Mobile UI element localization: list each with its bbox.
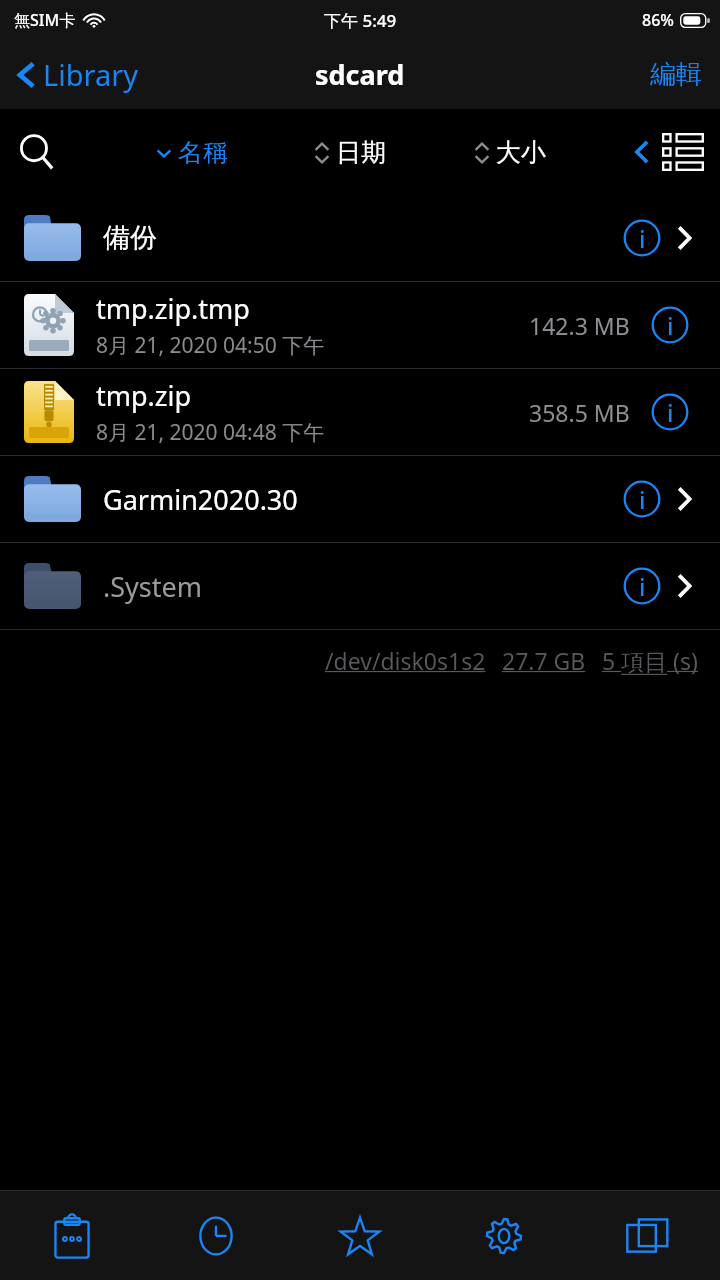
- staticText: i: [639, 222, 646, 255]
- staticText: 8月 21, 2020 04:48 下午: [96, 418, 325, 447]
- button[interactable]: Info: [622, 566, 662, 606]
- staticText: 日期: [336, 137, 386, 168]
- other: Open: [676, 485, 692, 513]
- staticText: tmp.zip.tmp: [96, 290, 250, 327]
- staticText: 8月 21, 2020 04:50 下午: [96, 331, 325, 360]
- staticText: 大小: [496, 137, 546, 168]
- button[interactable]: 編輯: [632, 48, 720, 101]
- button[interactable]: Settings: [432, 1191, 576, 1280]
- button[interactable]: 日期: [308, 129, 392, 176]
- button[interactable]: .System: [0, 543, 720, 629]
- staticText: 358.5 MB: [529, 397, 630, 428]
- button[interactable]: 備份: [0, 195, 720, 281]
- button[interactable]: Garmin2020.30: [0, 456, 720, 542]
- staticText: Garmin2020.30: [103, 481, 622, 518]
- button[interactable]: List view: [658, 129, 708, 175]
- button[interactable]: 名稱: [150, 129, 234, 176]
- staticText: i: [667, 396, 674, 429]
- button[interactable]: Favorites: [288, 1191, 432, 1280]
- staticText: 編輯: [650, 58, 702, 91]
- staticText: 86%: [642, 9, 674, 31]
- other: Open: [676, 224, 692, 252]
- staticText: i: [639, 483, 646, 516]
- staticText: 5 項目 (s): [602, 645, 698, 676]
- staticText: 無SIM卡: [14, 9, 76, 31]
- staticText: sdcard: [315, 56, 405, 93]
- staticText: /dev/disk0s1s2: [325, 645, 486, 676]
- button[interactable]: Windows: [576, 1191, 720, 1280]
- button[interactable]: Previous: [626, 130, 658, 174]
- staticText: 名稱: [178, 137, 228, 168]
- staticText: tmp.zip: [96, 377, 192, 414]
- button[interactable]: 大小: [468, 129, 552, 176]
- button[interactable]: Library: [16, 55, 138, 94]
- staticText: .System: [103, 568, 622, 605]
- button[interactable]: Search: [10, 125, 64, 179]
- button[interactable]: Info: [622, 479, 662, 519]
- staticText: 27.7 GB: [502, 645, 586, 676]
- button[interactable]: Clipboard: [0, 1191, 144, 1280]
- button[interactable]: Info: [650, 305, 690, 345]
- staticText: 備份: [103, 221, 622, 255]
- staticText: i: [639, 570, 646, 603]
- button[interactable]: Recent: [144, 1191, 288, 1280]
- staticText: Library: [43, 55, 138, 94]
- button[interactable]: tmp.zip.tmp: [0, 282, 720, 368]
- other: Open: [676, 572, 692, 600]
- staticText: 142.3 MB: [529, 310, 630, 341]
- staticText: 下午 5:49: [324, 9, 397, 32]
- button[interactable]: Info: [650, 392, 690, 432]
- button[interactable]: Info: [622, 218, 662, 258]
- button[interactable]: tmp.zip: [0, 369, 720, 455]
- staticText: i: [667, 309, 674, 342]
